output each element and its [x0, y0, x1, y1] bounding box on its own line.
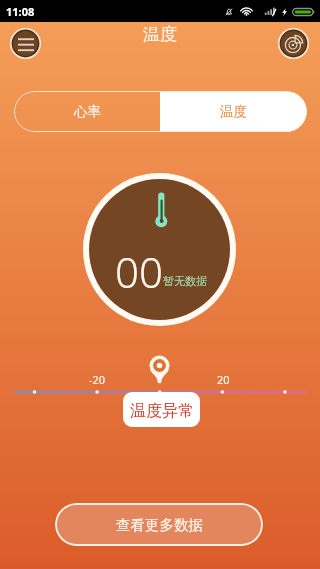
staticText: 温度异常	[130, 401, 194, 421]
staticText: -20	[89, 372, 106, 387]
button[interactable]: 查看更多数据	[55, 503, 263, 546]
button[interactable]: 心率	[14, 91, 160, 132]
button[interactable]: 温度	[160, 91, 307, 132]
staticText: 20	[217, 372, 230, 387]
staticText: 温度	[143, 24, 177, 45]
button[interactable]: Menu	[10, 28, 41, 59]
staticText: 00	[115, 243, 163, 300]
staticText: 温度	[220, 103, 247, 120]
staticText: 暂无数据	[163, 274, 207, 288]
button[interactable]: 温度异常	[123, 392, 200, 427]
staticText: 11:08	[6, 4, 35, 19]
staticText: 查看更多数据	[116, 516, 203, 534]
staticText: 心率	[74, 103, 101, 120]
button[interactable]: Statistics	[278, 28, 309, 59]
